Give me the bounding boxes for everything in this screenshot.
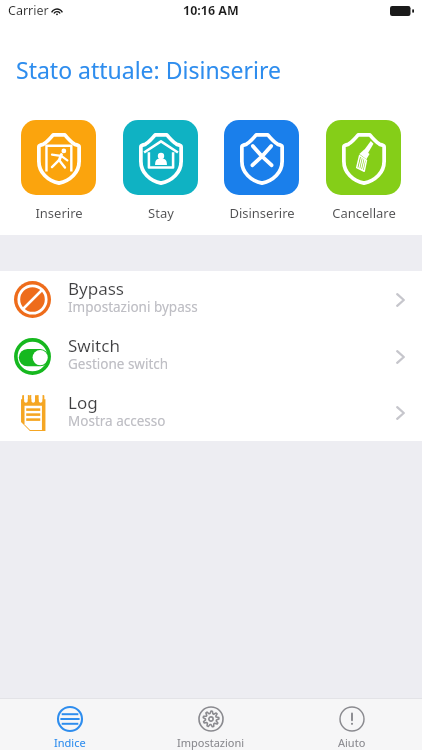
button[interactable]: Switch	[0, 328, 422, 385]
staticText: Bypass	[68, 277, 124, 300]
button[interactable]: Bypass	[0, 271, 422, 328]
staticText: Gestione switch	[68, 355, 169, 373]
other: Indice	[57, 706, 83, 732]
staticText: 10:16 AM	[183, 2, 239, 19]
staticText: Impostazioni	[177, 735, 245, 750]
button[interactable]: Disinserire	[224, 120, 299, 222]
staticText: Stay	[148, 204, 174, 222]
staticText: Cancellare	[332, 204, 396, 222]
button[interactable]: Aiuto	[281, 699, 422, 750]
staticText: Indice	[54, 735, 86, 750]
other: Impostazioni	[198, 706, 224, 732]
staticText: Inserire	[35, 204, 83, 222]
button[interactable]: Stay	[123, 120, 198, 222]
button[interactable]: Log	[0, 385, 422, 441]
staticText: Switch	[68, 334, 120, 357]
staticText: Carrier	[8, 2, 49, 19]
other: Aiuto	[339, 706, 365, 732]
button[interactable]: Indice	[0, 699, 140, 750]
staticText: Impostazioni bypass	[68, 298, 198, 316]
staticText: Aiuto	[338, 735, 366, 750]
button[interactable]: Impostazioni	[140, 699, 281, 750]
button[interactable]: Cancellare	[326, 120, 401, 222]
staticText: Log	[68, 391, 98, 414]
staticText: Disinserire	[229, 204, 295, 222]
staticText: Mostra accesso	[68, 412, 166, 430]
button[interactable]: Inserire	[21, 120, 96, 222]
staticText: Stato attuale: Disinserire	[16, 54, 282, 85]
